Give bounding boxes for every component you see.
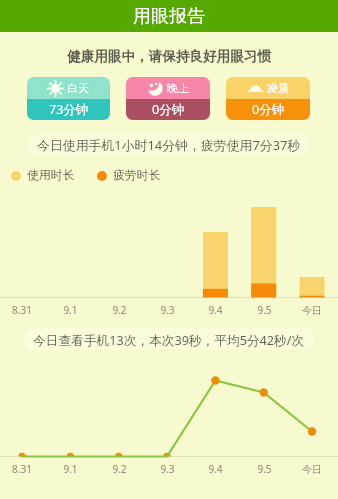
staticText: 9.5 (257, 303, 272, 317)
staticText: 9.2 (112, 303, 127, 317)
staticText: 9.5 (257, 462, 272, 476)
staticText: 9.2 (112, 462, 127, 476)
staticText: 9.3 (160, 462, 175, 476)
staticText: 使用时长 (27, 168, 75, 183)
staticText: 白天 (67, 81, 89, 95)
staticText: 今日 (302, 304, 322, 317)
staticText: 健康用眼中，请保持良好用眼习惯 (67, 48, 271, 65)
staticText: 晚上 (167, 81, 189, 95)
staticText: 今日查看手机13次，本次39秒，平均5分42秒/次 (33, 331, 305, 348)
staticText: 0分钟 (252, 101, 285, 118)
staticText: 8.31 (12, 462, 32, 476)
button[interactable]: 今日使用手机1小时14分钟，疲劳使用7分37秒 (28, 134, 310, 155)
staticText: 凌晨 (267, 81, 289, 95)
staticText: 今日使用手机1小时14分钟，疲劳使用7分37秒 (37, 136, 301, 154)
staticText: 73分钟 (49, 101, 89, 118)
button[interactable]: 凌晨 (226, 77, 310, 120)
button[interactable]: 今日查看手机13次，本次39秒，平均5分42秒/次 (24, 328, 314, 350)
staticText: 9.1 (63, 462, 78, 476)
staticText: 疲劳时长 (113, 168, 161, 183)
button[interactable]: 白天 (27, 77, 110, 120)
staticText: 9.3 (160, 303, 175, 317)
staticText: 8.31 (12, 303, 32, 317)
staticText: 9.4 (208, 462, 223, 476)
staticText: 用眼报告 (133, 5, 205, 28)
staticText: 今日 (302, 463, 322, 476)
button[interactable]: 晚上 (126, 77, 210, 120)
staticText: 9.4 (208, 303, 223, 317)
staticText: 0分钟 (152, 101, 185, 118)
staticText: 9.1 (63, 303, 78, 317)
